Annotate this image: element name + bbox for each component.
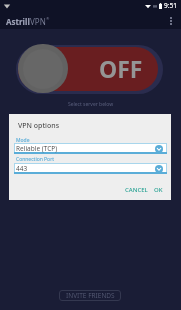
staticText: 9:51 — [164, 1, 177, 10]
staticText: ® — [46, 16, 50, 21]
staticText: VPN — [30, 16, 46, 27]
staticText: Select server below — [0, 101, 181, 108]
button[interactable]: More options — [166, 13, 176, 29]
other: Open dropdown — [155, 145, 163, 153]
staticText: Mode — [16, 137, 30, 144]
button[interactable]: Reliable (TCP) — [14, 143, 167, 154]
button[interactable]: VPN power toggle — [18, 47, 158, 91]
staticText: OFF — [99, 53, 143, 84]
staticText: 443 — [16, 164, 28, 173]
other: Open dropdown — [155, 165, 163, 173]
button[interactable]: OK — [151, 184, 166, 196]
staticText: Astrill — [6, 16, 30, 27]
button[interactable]: 443 — [14, 163, 167, 174]
button[interactable]: CANCEL — [122, 184, 151, 196]
staticText: VPN options — [18, 121, 60, 131]
staticText: Reliable (TCP) — [16, 144, 58, 153]
staticText: Connection Port — [16, 156, 55, 163]
staticText: INVITE FRIENDS — [66, 291, 115, 300]
button[interactable]: INVITE FRIENDS — [59, 290, 121, 301]
